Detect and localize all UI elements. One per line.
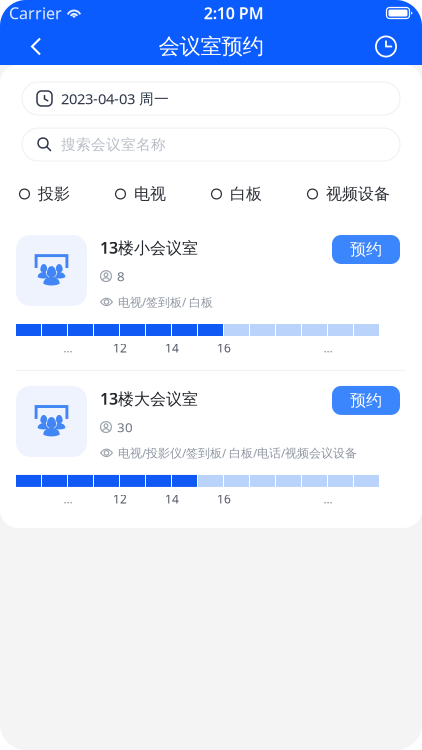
button[interactable]: 预约 — [332, 235, 400, 264]
staticText: 电视/投影仪/签到板/ 白板/电话/视频会议设备 — [118, 445, 357, 461]
staticText: 13楼小会议室 — [100, 237, 198, 258]
button[interactable]: Booking history — [364, 27, 408, 65]
staticText: 预约 — [350, 391, 382, 410]
button[interactable]: Back — [14, 27, 58, 65]
button[interactable]: 电视 — [115, 185, 211, 203]
staticText: 14 — [165, 491, 179, 507]
staticText: 30 — [117, 418, 133, 436]
staticText: ... — [63, 491, 72, 507]
button[interactable]: 视频设备 — [307, 185, 403, 203]
staticText: 2:10 PM — [204, 2, 264, 24]
button[interactable]: 搜索会议室名称 — [22, 128, 400, 161]
staticText: ... — [323, 340, 332, 356]
button[interactable]: 投影 — [19, 185, 115, 203]
staticText: 16 — [217, 491, 231, 507]
staticText: 会议室预约 — [158, 33, 263, 60]
button[interactable]: 白板 — [211, 185, 307, 203]
button[interactable]: 13楼大会议室 — [16, 386, 406, 507]
staticText: 2023-04-03 周一 — [61, 89, 169, 108]
staticText: 电视/签到板/ 白板 — [118, 294, 213, 310]
staticText: 投影 — [38, 184, 70, 204]
staticText: ... — [63, 340, 72, 356]
staticText: Carrier — [9, 2, 62, 24]
staticText: 13楼大会议室 — [100, 388, 198, 409]
button[interactable]: 13楼小会议室 — [16, 235, 406, 356]
staticText: 16 — [217, 340, 231, 356]
staticText: 搜索会议室名称 — [61, 135, 166, 153]
staticText: 12 — [113, 491, 127, 507]
staticText: 12 — [113, 340, 127, 356]
staticText: 电视 — [134, 184, 166, 204]
staticText: 白板 — [230, 184, 262, 204]
staticText: ... — [323, 491, 332, 507]
button[interactable]: 2023-04-03 周一 — [22, 82, 400, 115]
button[interactable]: 预约 — [332, 386, 400, 415]
staticText: 预约 — [350, 240, 382, 259]
staticText: 8 — [117, 267, 125, 285]
staticText: 视频设备 — [326, 184, 390, 204]
staticText: 14 — [165, 340, 179, 356]
